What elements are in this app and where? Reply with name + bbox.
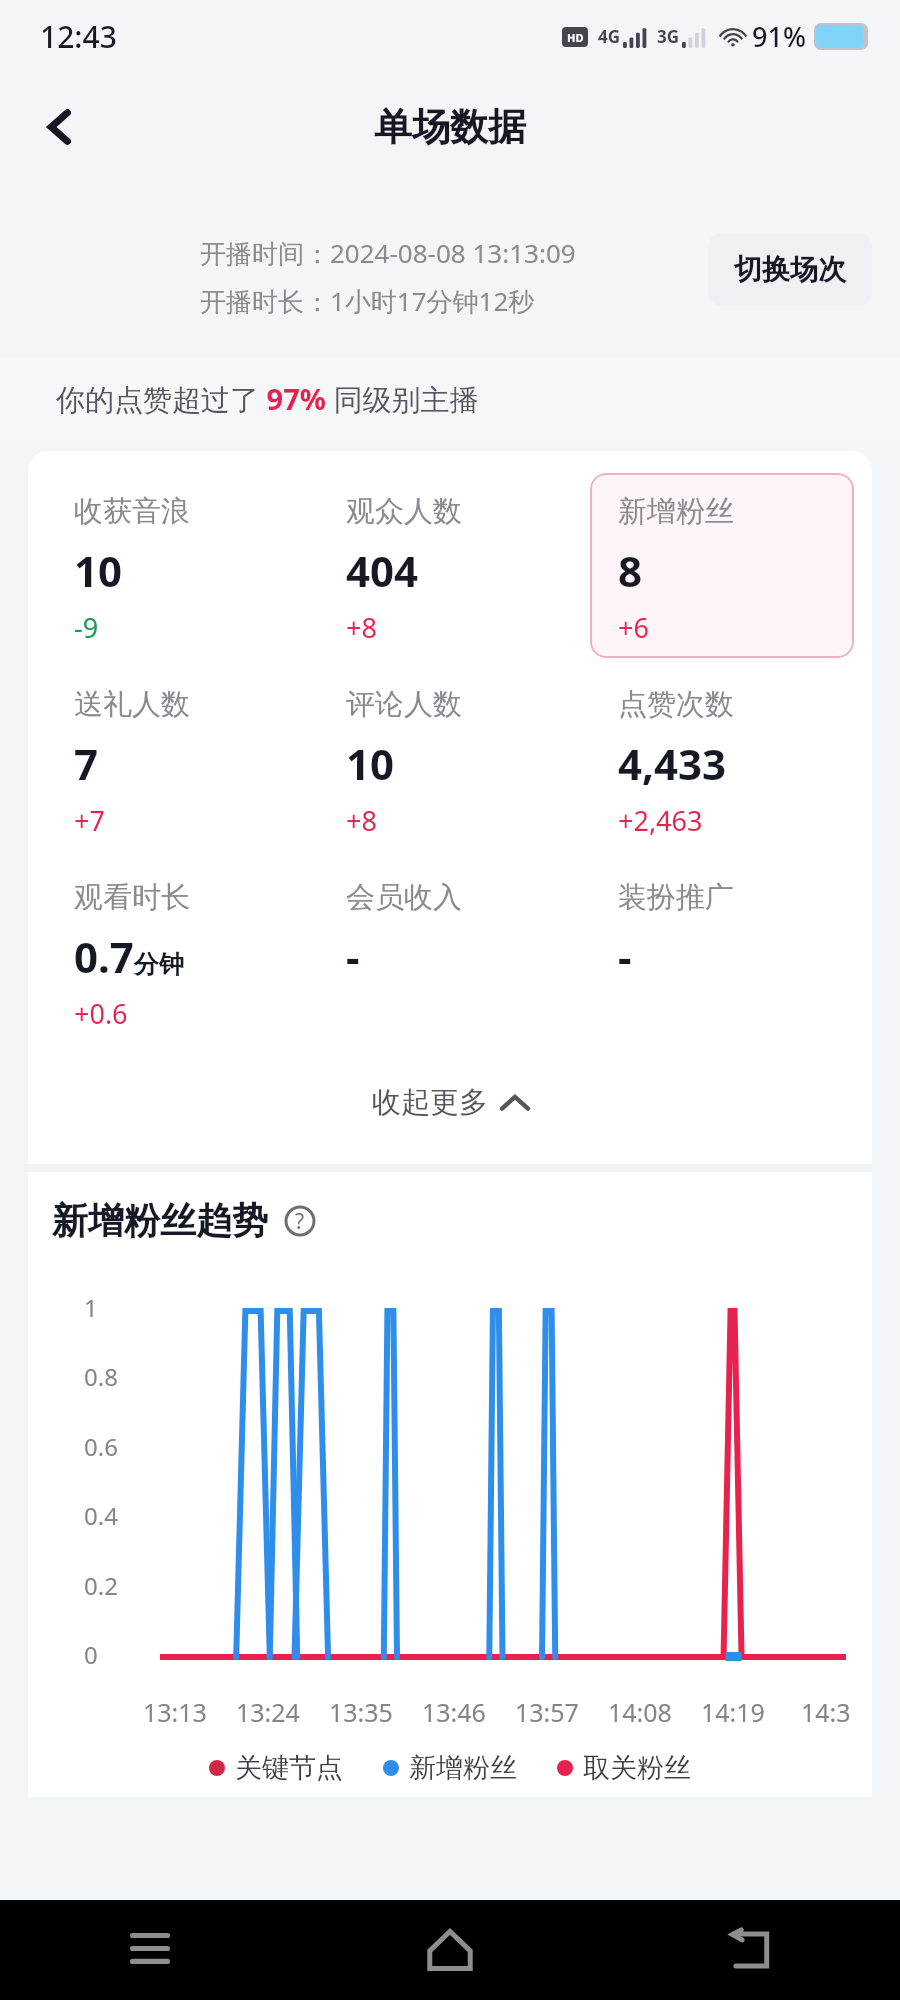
button[interactable]: 收获音浪 bbox=[46, 473, 310, 658]
staticText: 91% bbox=[752, 18, 806, 55]
staticText: - bbox=[346, 928, 360, 985]
staticText: ? bbox=[295, 1207, 305, 1236]
button[interactable]: Help bbox=[282, 1203, 318, 1239]
staticText: 404 bbox=[346, 542, 419, 599]
staticText: +2,463 bbox=[618, 802, 703, 839]
staticText: 0.6 bbox=[84, 1430, 118, 1463]
staticText: 7 bbox=[74, 735, 99, 792]
staticText: 新增粉丝 bbox=[618, 493, 734, 530]
staticText: 12:43 bbox=[40, 16, 117, 57]
staticText: 观众人数 bbox=[346, 493, 462, 530]
staticText: 8 bbox=[618, 542, 643, 599]
staticText: 装扮推广 bbox=[618, 879, 734, 916]
staticText: 新增粉丝 bbox=[409, 1751, 517, 1785]
staticText: - bbox=[618, 928, 632, 985]
staticText: 0.4 bbox=[84, 1499, 118, 1532]
staticText: +8 bbox=[346, 802, 377, 839]
staticText: 10 bbox=[74, 542, 123, 599]
staticText: 4G bbox=[598, 25, 621, 48]
staticText: 评论人数 bbox=[346, 686, 462, 723]
staticText: 4,433 bbox=[618, 735, 727, 792]
button[interactable]: 点赞次数 bbox=[590, 666, 854, 851]
staticText: 13:24 bbox=[236, 1695, 300, 1729]
staticText: -9 bbox=[74, 609, 99, 646]
staticText: 13:13 bbox=[143, 1695, 207, 1729]
staticText: 开播时长：1小时17分钟12秒 bbox=[200, 283, 535, 319]
staticText: 关键节点 bbox=[235, 1751, 343, 1785]
button[interactable]: 送礼人数 bbox=[46, 666, 310, 851]
staticText: 13:35 bbox=[329, 1695, 393, 1729]
staticText: 单场数据 bbox=[374, 103, 526, 151]
staticText: 3G bbox=[657, 25, 680, 48]
staticText: +6 bbox=[618, 609, 649, 646]
staticText: 14:08 bbox=[608, 1695, 672, 1729]
staticText: 13:46 bbox=[422, 1695, 486, 1729]
staticText: 新增粉丝趋势 bbox=[52, 1198, 268, 1243]
staticText: 1 bbox=[84, 1291, 98, 1324]
staticText: 送礼人数 bbox=[74, 686, 190, 723]
staticText: 10 bbox=[346, 735, 395, 792]
staticText: 点赞次数 bbox=[618, 686, 734, 723]
staticText: 会员收入 bbox=[346, 879, 462, 916]
button[interactable]: Recent apps bbox=[0, 1900, 300, 2000]
button[interactable]: 观众人数 bbox=[318, 473, 582, 658]
staticText: 你的点赞超过了 97% 同级别主播 bbox=[56, 379, 479, 419]
staticText: 收起更多 bbox=[372, 1084, 488, 1121]
staticText: 0.7分钟 bbox=[74, 928, 184, 985]
staticText: 观看时长 bbox=[74, 879, 190, 916]
staticText: 14:3 bbox=[801, 1695, 851, 1729]
staticText: HD bbox=[567, 30, 584, 45]
staticText: +8 bbox=[346, 609, 377, 646]
staticText: +7 bbox=[74, 802, 105, 839]
button[interactable]: 评论人数 bbox=[318, 666, 582, 851]
staticText: 取关粉丝 bbox=[583, 1751, 691, 1785]
staticText: 13:57 bbox=[515, 1695, 579, 1729]
staticText: 0 bbox=[84, 1638, 98, 1671]
button[interactable]: Back bbox=[22, 89, 98, 165]
button[interactable]: 切换场次 bbox=[708, 234, 872, 305]
staticText: 收获音浪 bbox=[74, 493, 190, 530]
button[interactable]: Back bbox=[600, 1900, 900, 2000]
staticText: 14:19 bbox=[701, 1695, 765, 1729]
button[interactable]: 会员收入 bbox=[318, 859, 582, 1044]
button[interactable]: 收起更多 bbox=[352, 1070, 548, 1135]
button[interactable]: 观看时长 bbox=[46, 859, 310, 1044]
button[interactable]: 新增粉丝 bbox=[590, 473, 854, 658]
staticText: 0.8 bbox=[84, 1360, 118, 1393]
staticText: 开播时间：2024-08-08 13:13:09 bbox=[200, 235, 576, 271]
button[interactable]: 装扮推广 bbox=[590, 859, 854, 1044]
staticText: 切换场次 bbox=[734, 252, 846, 287]
staticText: 0.2 bbox=[84, 1569, 118, 1602]
button[interactable]: Home bbox=[300, 1900, 600, 2000]
staticText: +0.6 bbox=[74, 995, 128, 1032]
